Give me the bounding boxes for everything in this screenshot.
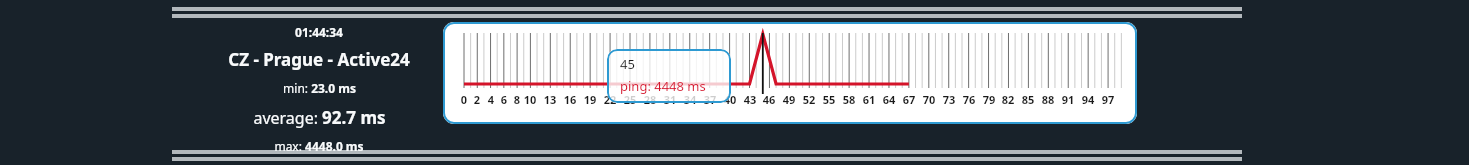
staticText: 40 — [723, 92, 737, 107]
staticText: CZ - Prague - Active24 — [228, 48, 410, 71]
staticText: 70 — [922, 92, 936, 107]
staticText: 43 — [743, 92, 757, 107]
staticText: 73 — [942, 92, 956, 107]
staticText: 16 — [563, 92, 577, 107]
staticText: 25 — [623, 92, 637, 107]
staticText: 10 — [523, 92, 537, 107]
staticText: 19 — [583, 92, 597, 107]
staticText: 58 — [842, 92, 856, 107]
staticText: 85 — [1021, 92, 1035, 107]
staticText: 28 — [643, 92, 657, 107]
staticText: 94 — [1081, 92, 1095, 107]
staticText: 91 — [1061, 92, 1075, 107]
staticText: average: 92.7 ms — [253, 106, 386, 129]
staticText: 45 — [620, 55, 635, 73]
button[interactable]: Ping latency chart — [443, 22, 1137, 124]
staticText: ping: 4448 ms — [620, 77, 706, 95]
staticText: 79 — [982, 92, 996, 107]
staticText: 46 — [762, 92, 776, 107]
staticText: 34 — [683, 92, 697, 107]
staticText: 88 — [1041, 92, 1055, 107]
staticText: 22 — [603, 92, 617, 107]
staticText: 4 — [484, 92, 498, 107]
staticText: 01:44:34 — [295, 24, 343, 40]
staticText: 61 — [862, 92, 876, 107]
staticText: 52 — [802, 92, 816, 107]
staticText: 0 — [457, 92, 471, 107]
staticText: 55 — [822, 92, 836, 107]
staticText: 64 — [882, 92, 896, 107]
staticText: 67 — [902, 92, 916, 107]
staticText: 82 — [1001, 92, 1015, 107]
staticText: min: 23.0 ms — [283, 80, 356, 96]
staticText: 37 — [703, 92, 717, 107]
staticText: 13 — [543, 92, 557, 107]
staticText: 6 — [497, 92, 511, 107]
staticText: 97 — [1101, 92, 1115, 107]
staticText: 31 — [663, 92, 677, 107]
staticText: 76 — [962, 92, 976, 107]
staticText: 49 — [782, 92, 796, 107]
staticText: 2 — [470, 92, 484, 107]
staticText: 8 — [510, 92, 524, 107]
staticText: max: 4448.0 ms — [274, 138, 364, 154]
